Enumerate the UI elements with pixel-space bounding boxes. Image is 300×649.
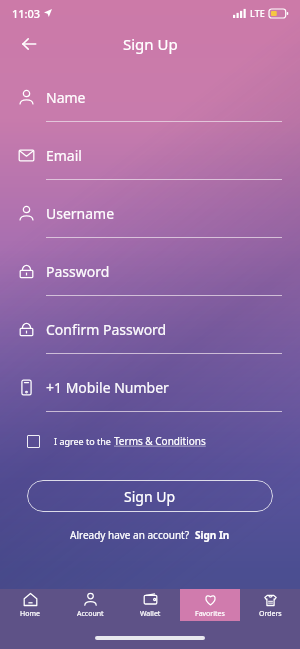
button[interactable]: Wallet [120,589,180,621]
button[interactable]: I agree to the [27,430,300,452]
button[interactable]: Terms & Conditions [114,434,206,448]
button[interactable]: Favorites [180,589,240,621]
staticText: Orders [259,609,282,619]
staticText: Email [46,146,82,165]
button[interactable]: Username [0,190,300,248]
staticText: Home [20,609,40,619]
button[interactable]: Home [0,589,60,621]
staticText: Sign Up [123,34,178,54]
staticText: Already have an account? [70,528,190,542]
button[interactable]: Sign Up [27,480,273,512]
staticText: 11:03 [12,6,41,21]
other: Password [18,263,35,280]
staticText: Password [46,262,110,281]
other: Confirm Password [18,321,35,338]
other: Mobile Number [18,379,35,396]
button[interactable]: Name [0,74,300,132]
button[interactable]: Orders [240,589,300,621]
staticText: I agree to the [54,435,114,447]
button[interactable]: Mobile Number [0,364,300,422]
other: Email [18,147,35,164]
button[interactable]: Password [0,248,300,306]
other: Username [18,205,35,222]
other: Name [18,89,35,106]
button[interactable]: Back [14,29,44,59]
staticText: Name [46,88,86,107]
button[interactable]: Email [0,132,300,190]
button[interactable]: Account [60,589,120,621]
staticText: +1 Mobile Number [46,378,169,397]
staticText: LTE [250,7,265,19]
staticText: Account [77,609,104,619]
staticText: Sign Up [124,487,176,506]
staticText: Wallet [140,609,161,619]
staticText: Favorites [195,609,225,619]
button[interactable]: Confirm Password [0,306,300,364]
staticText: Confirm Password [46,320,167,339]
button[interactable]: Sign In [195,528,230,542]
staticText: Username [46,204,115,223]
